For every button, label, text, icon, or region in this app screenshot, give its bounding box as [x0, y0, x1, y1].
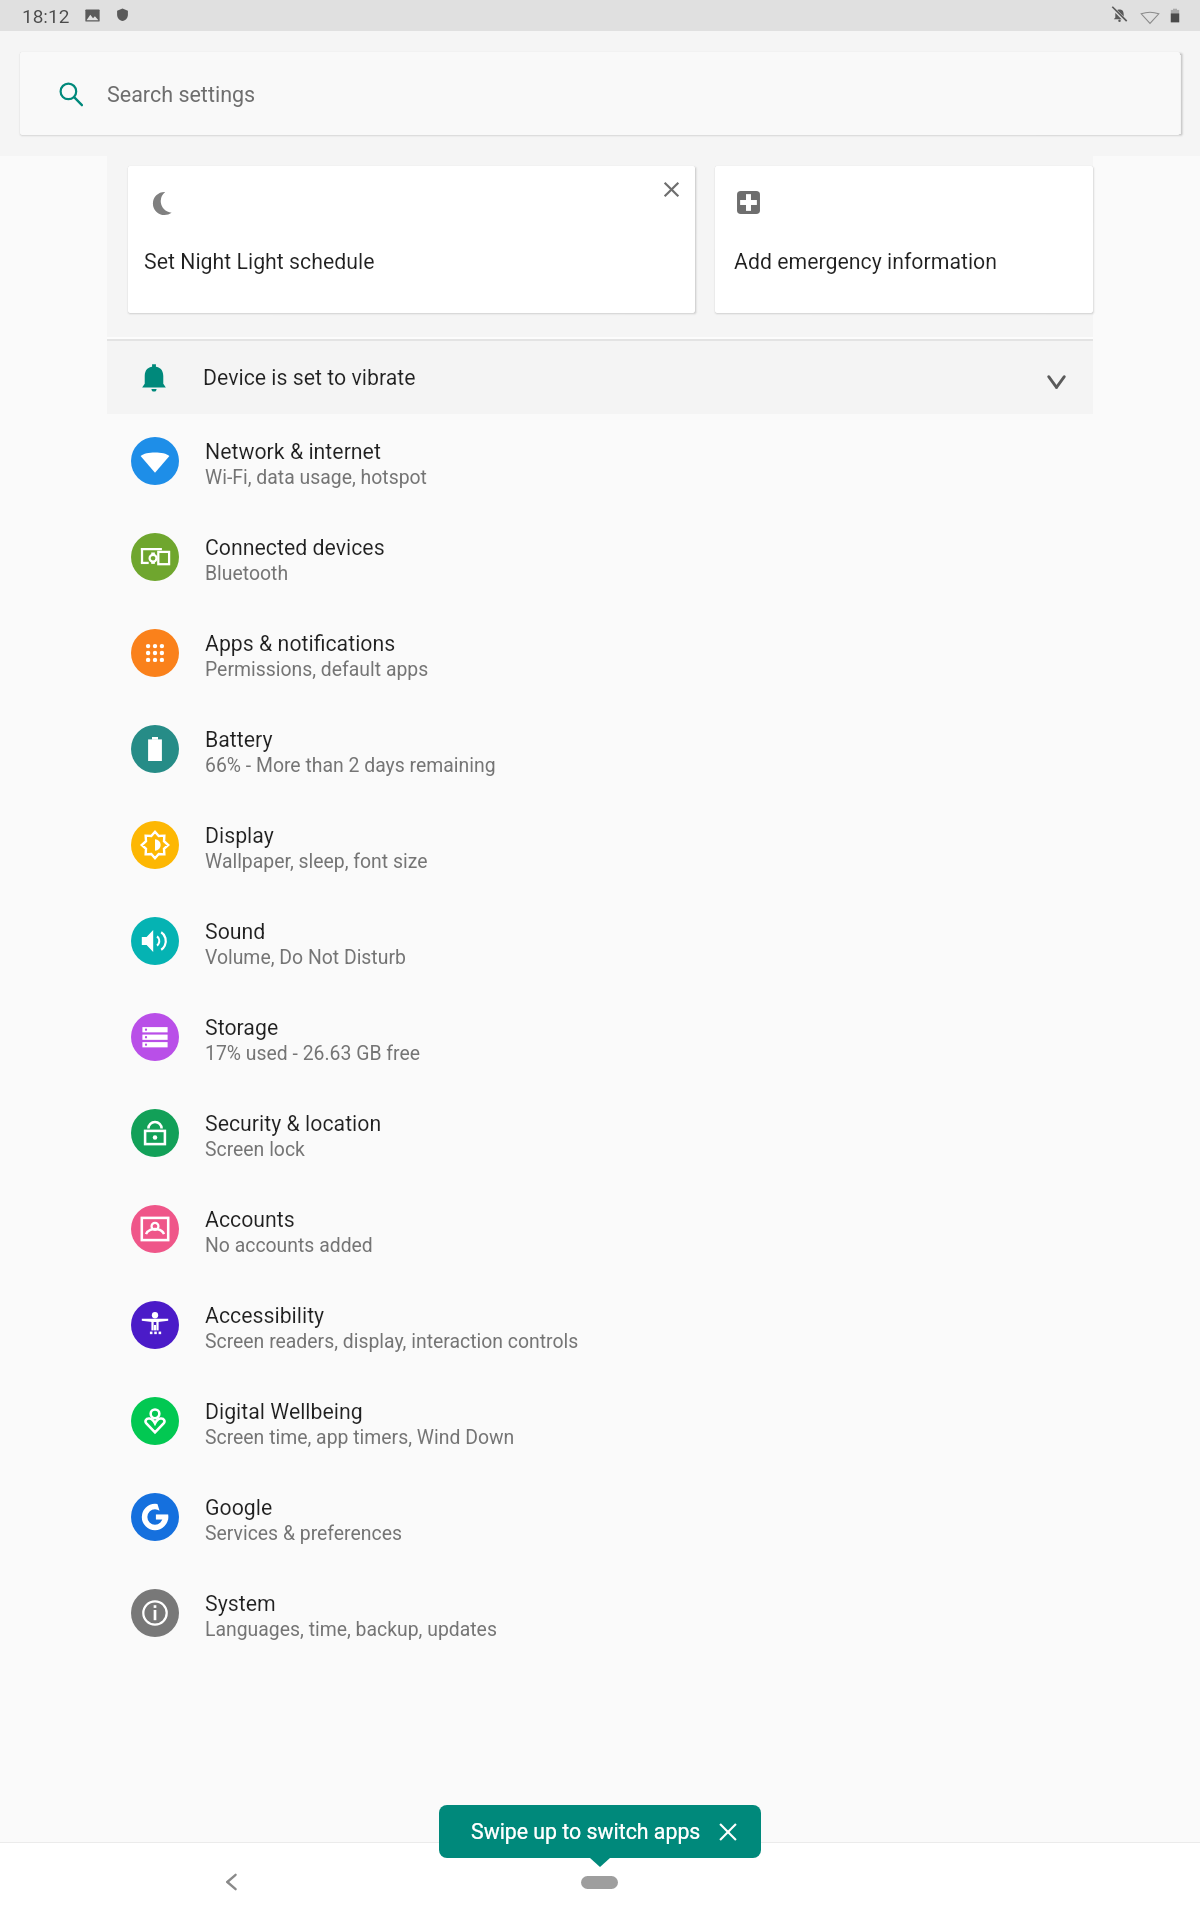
button[interactable]: Home [581, 1876, 618, 1889]
staticText: Screen time, app timers, Wind Down [205, 1426, 515, 1449]
button[interactable]: Display [0, 797, 1200, 893]
staticText: Security & location [205, 1111, 382, 1136]
staticText: Screen lock [205, 1138, 305, 1161]
staticText: Storage [205, 1015, 279, 1040]
staticText: System [205, 1591, 276, 1616]
button[interactable]: Digital Wellbeing [0, 1373, 1200, 1469]
staticText: Accessibility [205, 1303, 325, 1328]
staticText: Bluetooth [205, 562, 289, 585]
button[interactable]: Accessibility [0, 1277, 1200, 1373]
staticText: Google [205, 1495, 273, 1520]
staticText: Add emergency information [734, 249, 998, 274]
staticText: Search settings [107, 82, 256, 107]
staticText: Device is set to vibrate [203, 365, 416, 390]
button[interactable]: Search settings [20, 52, 1180, 135]
staticText: 17% used - 26.63 GB free [205, 1042, 421, 1065]
staticText: Accounts [205, 1207, 295, 1232]
button[interactable]: Apps & notifications [0, 605, 1200, 701]
staticText: Display [205, 823, 274, 848]
button[interactable]: Network & internet [0, 413, 1200, 509]
staticText: No accounts added [205, 1234, 373, 1257]
button[interactable]: Accounts [0, 1181, 1200, 1277]
button[interactable]: Sound [0, 893, 1200, 989]
staticText: Screen readers, display, interaction con… [205, 1330, 579, 1353]
staticText: Swipe up to switch apps [471, 1819, 701, 1844]
staticText: 18:12 [22, 5, 70, 27]
staticText: Volume, Do Not Disturb [205, 946, 406, 969]
button[interactable]: Battery [0, 701, 1200, 797]
staticText: Wi-Fi, data usage, hotspot [205, 466, 427, 489]
button[interactable]: System [0, 1565, 1200, 1661]
button[interactable]: Security & location [0, 1085, 1200, 1181]
staticText: Digital Wellbeing [205, 1399, 363, 1424]
staticText: Services & preferences [205, 1522, 402, 1545]
button[interactable]: Google [0, 1469, 1200, 1565]
staticText: 66% - More than 2 days remaining [205, 754, 496, 777]
staticText: Set Night Light schedule [144, 249, 375, 274]
staticText: Apps & notifications [205, 631, 396, 656]
button[interactable]: Device is set to vibrate [107, 341, 1093, 414]
button[interactable]: Storage [0, 989, 1200, 1085]
button[interactable]: Dismiss suggestion [649, 167, 693, 211]
staticText: Wallpaper, sleep, font size [205, 850, 428, 873]
staticText: Sound [205, 919, 266, 944]
button[interactable]: Back [214, 1864, 250, 1900]
staticText: Network & internet [205, 439, 381, 464]
staticText: Languages, time, backup, updates [205, 1618, 497, 1641]
button[interactable]: Connected devices [0, 509, 1200, 605]
button[interactable]: Set Night Light schedule [128, 166, 695, 313]
button[interactable]: Add emergency information [715, 166, 1093, 313]
staticText: Battery [205, 727, 273, 752]
staticText: Permissions, default apps [205, 658, 429, 681]
staticText: Connected devices [205, 535, 385, 560]
button[interactable]: Swipe up to switch apps [439, 1805, 761, 1858]
